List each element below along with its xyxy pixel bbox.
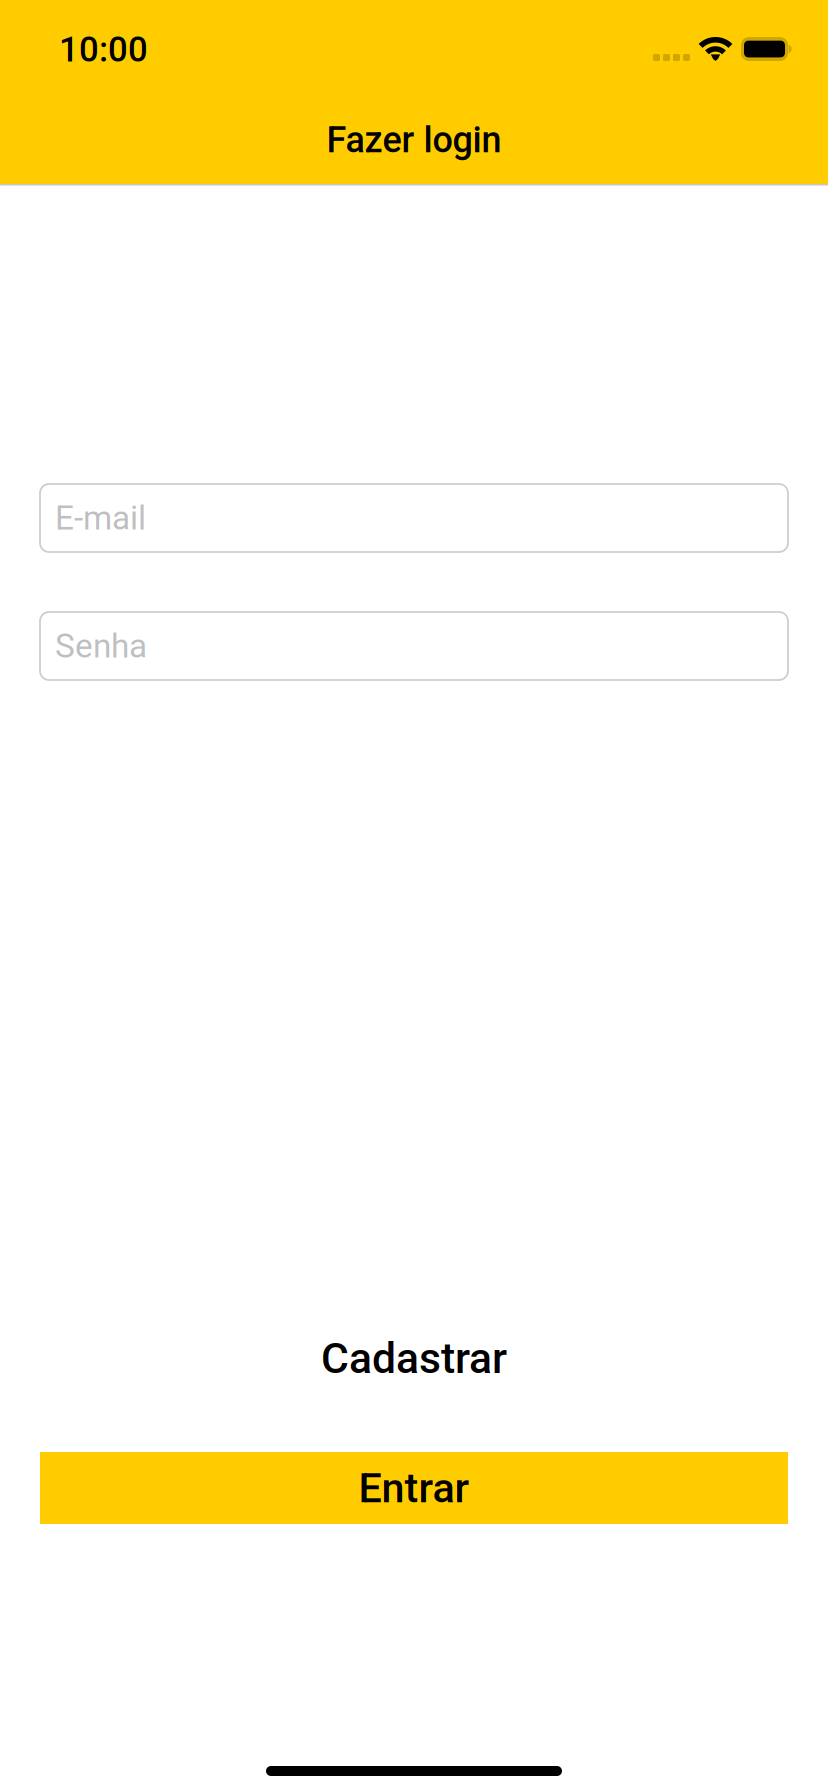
button[interactable]: Cadastrar — [0, 1329, 828, 1388]
button[interactable]: Entrar — [40, 1452, 788, 1524]
button[interactable]: Senha — [40, 612, 788, 680]
staticText: Fazer login — [326, 119, 501, 161]
button[interactable]: E-mail — [40, 484, 788, 552]
staticText: 10:00 — [59, 29, 148, 70]
staticText: E-mail — [55, 498, 146, 538]
staticText: Cadastrar — [321, 1333, 507, 1383]
staticText: Entrar — [358, 1464, 469, 1512]
staticText: Senha — [55, 626, 147, 666]
